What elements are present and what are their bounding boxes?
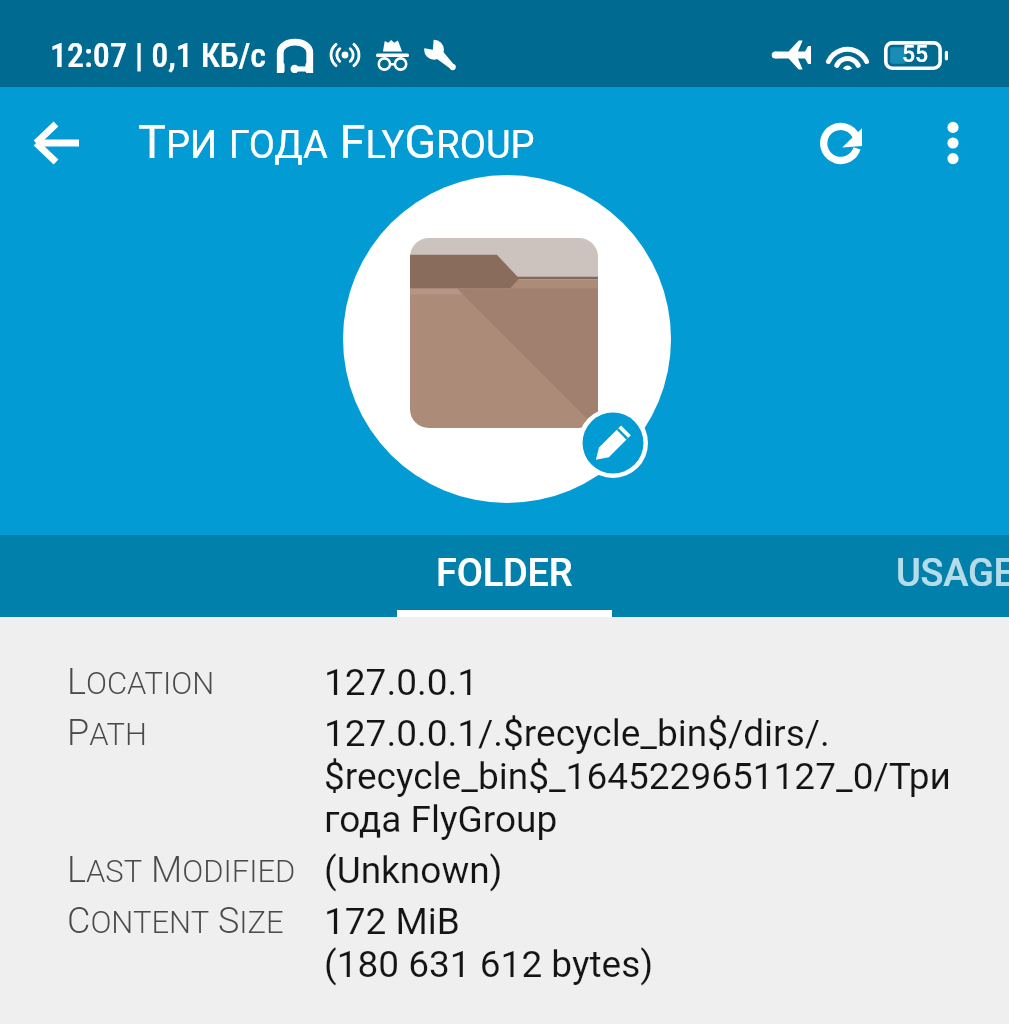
staticText: года FlyGroup	[324, 798, 558, 841]
staticText: $recycle_bin$_1645229651127_0/Три	[324, 755, 951, 798]
staticText: LOCATION	[67, 661, 215, 703]
staticText: LAST MODIFIED	[67, 849, 296, 891]
button[interactable]: Rename	[578, 408, 648, 478]
staticText: 55	[902, 41, 929, 68]
staticText: 127.0.0.1	[324, 661, 479, 704]
button[interactable]: Refresh	[785, 87, 897, 199]
staticText: USAGE	[896, 551, 1009, 596]
staticText: ТРИ ГОДА FLYGROUP	[138, 114, 535, 169]
staticText: 127.0.0.1/.$recycle_bin$/dirs/.	[324, 712, 830, 755]
staticText: CONTENT SIZE	[67, 900, 284, 942]
button[interactable]: USAGE	[612, 535, 1009, 617]
staticText: PATH	[67, 712, 148, 754]
button[interactable]: More options	[897, 87, 1009, 199]
staticText: (Unknown)	[324, 849, 503, 892]
staticText: (180 631 612 bytes)	[324, 943, 654, 986]
staticText: 172 MiB	[324, 900, 460, 943]
button[interactable]: FOLDER	[397, 535, 612, 617]
staticText: FOLDER	[436, 551, 573, 596]
staticText: 12:07 | 0,1 КБ/с	[50, 35, 267, 75]
button[interactable]: Navigate up	[0, 87, 112, 199]
